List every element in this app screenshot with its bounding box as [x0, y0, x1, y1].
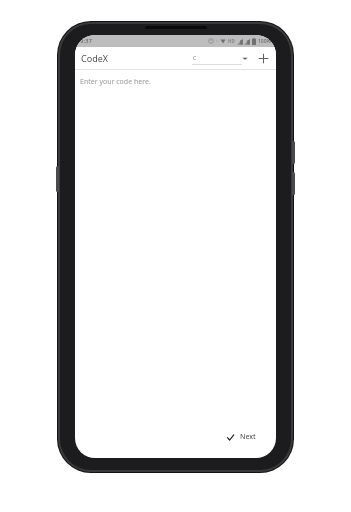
staticText: 9:37: [80, 37, 92, 45]
staticText: 100%: [258, 38, 271, 45]
button[interactable]: Next: [215, 425, 267, 449]
button[interactable]: New file: [255, 50, 271, 66]
button[interactable]: c: [192, 51, 248, 65]
staticText: c: [193, 53, 197, 62]
staticText: Next: [240, 432, 256, 442]
staticText: Enter your code here.: [80, 77, 151, 87]
staticText: CodeX: [81, 52, 109, 64]
staticText: HD: [228, 38, 235, 44]
